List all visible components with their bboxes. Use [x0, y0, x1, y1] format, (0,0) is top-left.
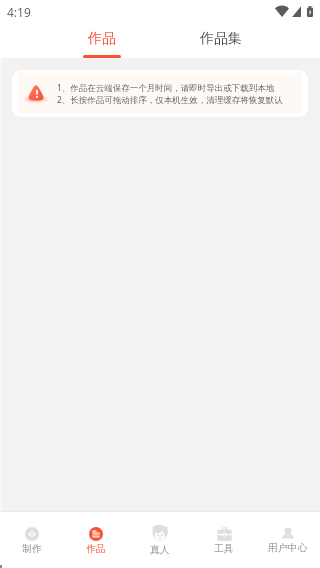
other: Create: [25, 527, 39, 541]
button[interactable]: Works: [64, 512, 128, 568]
staticText: 4:19: [7, 4, 31, 20]
staticText: 制作: [22, 543, 42, 555]
staticText: 作品: [86, 543, 106, 555]
other: People: [152, 525, 168, 542]
button[interactable]: Tools: [192, 512, 256, 568]
other: Works: [89, 527, 103, 541]
button[interactable]: Create: [0, 512, 64, 568]
other: Tools: [217, 527, 232, 541]
button[interactable]: User center: [256, 512, 320, 568]
other: User center: [281, 527, 295, 540]
button[interactable]: 作品: [0, 24, 160, 58]
staticText: 作品: [88, 30, 116, 48]
button[interactable]: 1、作品在云端保存一个月时间，请即时导出或下载到本地 2、长按作品可拖动排序，仅…: [12, 70, 308, 117]
staticText: 真人: [150, 544, 170, 556]
staticText: 1、作品在云端保存一个月时间，请即时导出或下载到本地 2、长按作品可拖动排序，仅…: [57, 82, 283, 106]
staticText: 工具: [214, 543, 234, 555]
button[interactable]: 作品集: [160, 24, 320, 58]
button[interactable]: People: [128, 512, 192, 568]
staticText: 作品集: [200, 30, 242, 48]
staticText: 用户中心: [268, 542, 308, 554]
